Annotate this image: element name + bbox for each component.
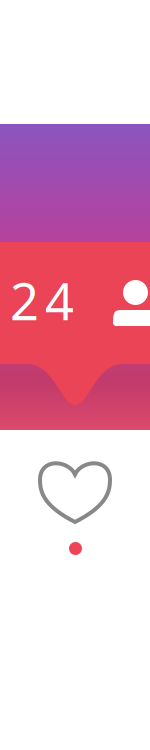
staticText: 24 <box>10 267 74 334</box>
